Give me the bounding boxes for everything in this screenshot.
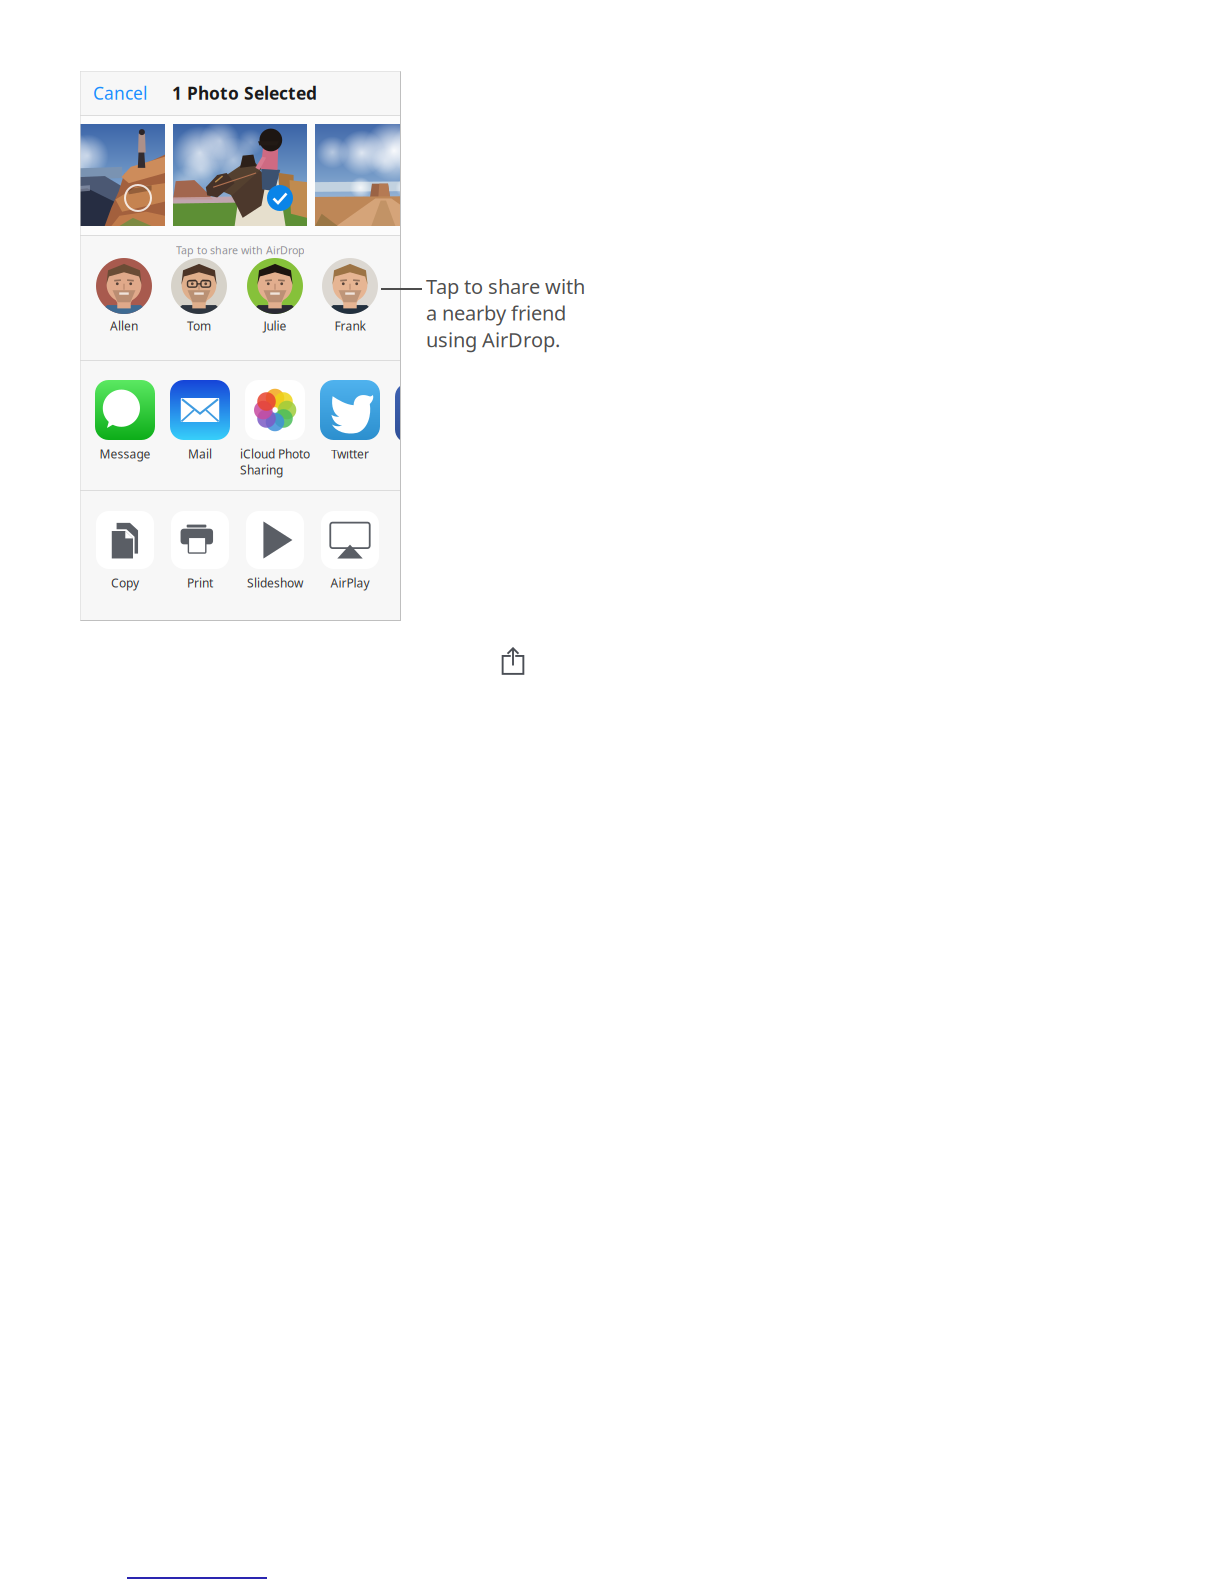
button[interactable]: Mail [157,380,243,462]
staticText: Message [99,446,150,462]
staticText: Print [187,575,213,591]
button[interactable]: More apps [395,383,455,443]
staticText: using AirDrop. [426,326,560,353]
staticText: Tom [187,318,211,334]
staticText: Frank [334,318,365,334]
button[interactable]: Photo 1, not selected [31,124,165,226]
button[interactable]: Share [499,647,527,675]
staticText: Slideshow [247,575,303,591]
button[interactable]: Photo 2, selected [173,124,307,226]
staticText: a nearby friend [426,300,566,326]
staticText: Julie [263,318,286,334]
staticText: Twitter [331,446,369,462]
button[interactable]: Photo 3, not selected [315,124,449,226]
button[interactable]: Julie [239,258,311,334]
staticText: iCloud Photo Sharing [240,446,310,478]
button[interactable]: Message [82,380,168,462]
button[interactable]: iCloud Photo Sharing [232,380,318,478]
button[interactable]: Slideshow [232,511,318,591]
button[interactable]: Tom [163,258,235,334]
button[interactable]: Twitter [307,380,393,462]
button[interactable]: Print [157,511,243,591]
staticText: Allen [110,318,138,334]
staticText: Cancel [93,81,147,104]
staticText: Copy [111,575,139,591]
button[interactable]: AirPlay [307,511,393,591]
staticText: Tap to share with [426,273,585,300]
button[interactable]: Allen [88,258,160,334]
staticText: Mail [188,446,212,462]
button[interactable]: Copy [82,511,168,591]
staticText: Tap to share with AirDrop [176,243,305,257]
staticText: AirPlay [330,575,369,591]
button[interactable]: Cancel [93,71,163,115]
staticText: 1 Photo Selected [172,81,317,104]
button[interactable]: Frank [314,258,386,334]
